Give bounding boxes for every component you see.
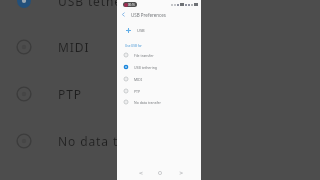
staticText: MIDI [58,39,90,55]
staticText: USB Preferences [131,12,166,18]
button[interactable]: Back [136,168,145,177]
button[interactable]: Home [155,168,164,177]
staticText: MIDI [134,77,143,82]
button[interactable]: MIDI [117,73,201,85]
staticText: File transfer [134,53,154,58]
staticText: USB tethering [134,65,157,70]
button[interactable]: No data transfer [117,96,201,108]
staticText: PTP [134,89,141,94]
staticText: No data transfer [134,100,162,105]
button[interactable]: File transfer [117,49,201,61]
button[interactable]: USB tethering [117,61,201,73]
button[interactable]: USB [117,24,201,37]
staticText: USB [137,28,145,33]
button[interactable]: Screen recording [123,2,137,7]
button[interactable]: Back [118,9,129,20]
button[interactable]: Recent apps [176,168,185,177]
staticText: USB tethe [58,0,122,9]
staticText: PTP [58,86,82,102]
staticText: Use USB for [125,44,142,48]
staticText: 00:16 [128,3,135,7]
staticText: No data tr [58,133,125,149]
button[interactable]: PTP [117,85,201,97]
